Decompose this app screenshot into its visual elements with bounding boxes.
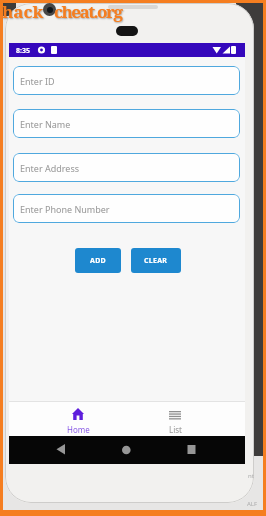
button[interactable]: CLEAR <box>131 248 181 273</box>
staticText: Enter Address <box>20 162 80 174</box>
staticText: ADD <box>90 256 106 266</box>
staticText: Enter ID <box>20 75 55 87</box>
staticText: ALF <box>247 500 258 508</box>
staticText: Enter Name <box>20 118 71 130</box>
button[interactable] <box>102 436 150 464</box>
staticText: hack <box>2 0 44 23</box>
button[interactable]: ADD <box>75 248 121 273</box>
staticText: cheat.org <box>54 0 122 23</box>
button[interactable]: Enter Address <box>13 153 240 182</box>
staticText: Home <box>67 424 90 435</box>
button[interactable]: Enter Phone Number <box>13 194 240 223</box>
button[interactable]: Enter Name <box>13 109 240 138</box>
button[interactable]: Enter ID <box>13 66 240 95</box>
button[interactable] <box>147 403 203 436</box>
staticText: Enter Phone Number <box>20 203 110 215</box>
staticText: 8:35 <box>16 46 30 56</box>
button[interactable] <box>37 436 85 464</box>
staticText: List <box>169 424 182 435</box>
staticText: nt <box>248 472 254 480</box>
staticText: CLEAR <box>144 256 168 266</box>
button[interactable] <box>50 403 106 436</box>
button[interactable] <box>167 436 215 464</box>
